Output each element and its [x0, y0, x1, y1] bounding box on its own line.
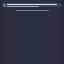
button[interactable]: Open item	[2, 3, 62, 7]
button[interactable]	[16, 9, 49, 11]
button[interactable]: Open item	[3, 4, 6, 7]
